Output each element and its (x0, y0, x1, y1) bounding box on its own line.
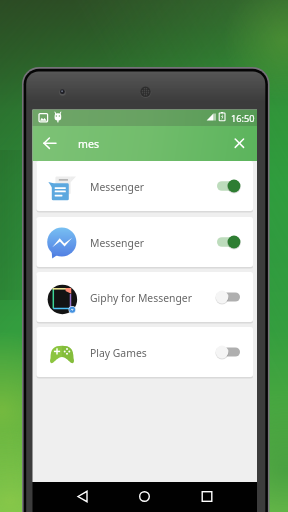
button[interactable]: Back (68, 484, 96, 512)
button[interactable]: Messenger (37, 217, 254, 267)
button[interactable]: Toggle Messenger (212, 175, 244, 197)
button[interactable]: Back (36, 129, 64, 157)
button[interactable]: Toggle Play Games (212, 341, 244, 363)
button[interactable]: Clear search (226, 129, 254, 157)
staticText: Messenger (90, 180, 145, 194)
staticText: Play Games (90, 346, 147, 360)
button[interactable]: Messenger (37, 161, 254, 211)
button[interactable]: Play Games (37, 327, 254, 377)
button[interactable]: Toggle Giphy for Messenger (212, 286, 244, 308)
staticText: mes (78, 137, 99, 151)
button[interactable]: Recent apps (193, 484, 221, 512)
staticText: 16:50 (231, 112, 255, 125)
button[interactable]: Toggle Messenger (212, 231, 244, 253)
button[interactable]: Giphy for Messenger (37, 272, 254, 322)
staticText: Giphy for Messenger (90, 291, 192, 305)
staticText: Messenger (90, 236, 145, 250)
button[interactable]: Home (130, 484, 158, 512)
